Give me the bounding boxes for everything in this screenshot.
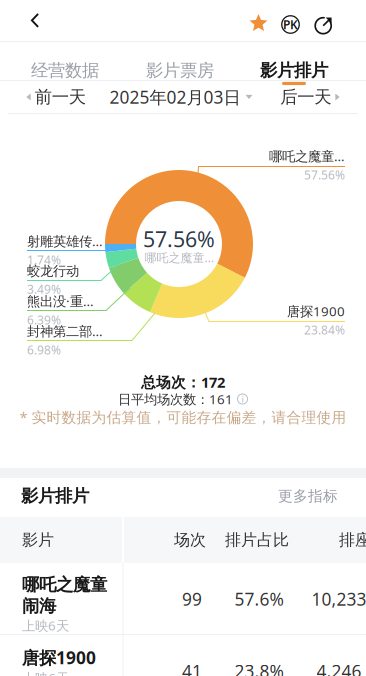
button[interactable]: 经营数据 [10, 41, 120, 80]
button[interactable]: 分享 [308, 8, 339, 41]
staticText: 3.49% [27, 281, 61, 297]
staticText: 99 [182, 587, 202, 610]
staticText: 封神第二部… [27, 322, 103, 340]
staticText: 上映6天 [22, 617, 69, 634]
staticText: 影片票房 [146, 60, 214, 81]
staticText: 排座 [339, 530, 366, 550]
staticText: 排片占比 [225, 530, 289, 550]
staticText: 57.6% [234, 587, 283, 610]
staticText: 前一天 [35, 86, 86, 108]
staticText: 41 [182, 659, 202, 676]
staticText: 蛟龙行动 [27, 263, 79, 279]
staticText: 日平均场次数：161 [118, 390, 233, 408]
staticText: 2025年02月03日 [110, 85, 241, 108]
staticText: 场次 [174, 530, 206, 550]
staticText: 23.84% [304, 322, 345, 338]
staticText: 6.39% [27, 312, 61, 328]
staticText: 影片 [22, 530, 54, 550]
staticText: 更多指标 [278, 487, 338, 505]
button[interactable]: 影片票房 [125, 41, 235, 80]
staticText: 57.56% [304, 167, 345, 183]
button[interactable]: 影片排片 [239, 41, 349, 80]
staticText: * 实时数据为估算值，可能存在偏差，请合理使用 [19, 407, 346, 427]
staticText: i [241, 393, 243, 405]
staticText: 哪吒之魔童… [144, 249, 213, 265]
staticText: 1.74% [27, 252, 61, 268]
button[interactable]: 更多指标 [258, 480, 338, 512]
staticText: 唐探1900 [287, 302, 345, 320]
button[interactable]: PK 对比 [275, 8, 306, 41]
staticText: 上映6天 [22, 669, 69, 676]
button[interactable]: 收藏 [243, 7, 274, 40]
button[interactable]: 唐探1900 [0, 635, 366, 676]
staticText: 4,246 [316, 659, 361, 676]
button[interactable]: 2025年02月03日 [101, 81, 261, 113]
button[interactable]: 哪吒之魔童 [0, 563, 366, 635]
button[interactable]: 后一天 [264, 81, 356, 113]
staticText: 唐探1900 [22, 646, 96, 669]
button[interactable]: 返回 [13, 0, 57, 41]
button[interactable]: 前一天 [10, 81, 102, 113]
staticText: 6.98% [27, 342, 61, 358]
staticText: PK [283, 16, 298, 32]
staticText: 23.8% [234, 659, 283, 676]
staticText: 10,233 [311, 587, 366, 610]
staticText: 熊出没·重… [27, 292, 94, 310]
staticText: 经营数据 [31, 60, 99, 81]
staticText: 哪吒之魔童 [22, 574, 107, 595]
staticText: 后一天 [280, 86, 331, 108]
staticText: 射雕英雄传… [27, 232, 103, 250]
staticText: 哪吒之魔童… [269, 147, 345, 165]
staticText: 闹海 [22, 595, 56, 617]
staticText: 影片排片 [21, 485, 89, 507]
staticText: 57.56% [143, 225, 215, 253]
staticText: 影片排片 [260, 60, 328, 81]
staticText: 总场次：172 [141, 372, 225, 392]
